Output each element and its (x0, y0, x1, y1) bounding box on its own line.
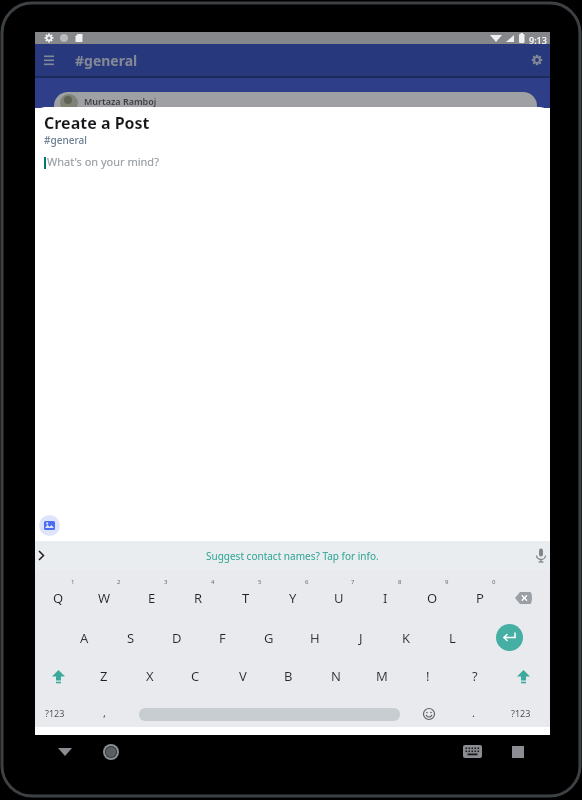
button[interactable]: R (175, 580, 222, 616)
staticText: F (219, 629, 226, 647)
staticText: Q (53, 589, 64, 607)
button[interactable] (463, 745, 482, 759)
staticText: What's on your mind? (47, 154, 159, 169)
staticText: V (239, 667, 247, 685)
staticText: E (148, 589, 156, 607)
button[interactable]: E (128, 580, 175, 616)
button[interactable]: N (312, 658, 359, 694)
button[interactable]: . (472, 705, 475, 720)
staticText: 4 (211, 578, 215, 586)
button[interactable]: P (456, 580, 503, 616)
button[interactable] (35, 658, 82, 694)
staticText: 5 (258, 578, 262, 586)
staticText: C (191, 667, 200, 685)
staticText: 3 (164, 578, 168, 586)
staticText: B (284, 667, 293, 685)
button[interactable] (530, 53, 544, 67)
staticText: S (127, 629, 135, 647)
staticText: L (449, 629, 456, 647)
button[interactable] (102, 743, 120, 761)
staticText: Z (100, 667, 108, 685)
staticText: N (331, 667, 341, 685)
button[interactable]: U (315, 580, 362, 616)
button[interactable]: A (61, 620, 108, 656)
staticText: #general (44, 133, 87, 147)
button[interactable] (496, 624, 523, 651)
button[interactable]: S (107, 620, 154, 656)
button[interactable]: G (245, 620, 292, 656)
button[interactable]: F (199, 620, 246, 656)
staticText: Suggest contact names? Tap for info. (206, 549, 379, 563)
button[interactable]: M (358, 658, 405, 694)
button[interactable]: V (219, 658, 266, 694)
staticText: 6 (305, 578, 309, 586)
button[interactable] (40, 52, 58, 68)
button[interactable]: I (362, 580, 409, 616)
staticText: O (427, 589, 438, 607)
staticText: U (334, 589, 344, 607)
staticText: W (98, 589, 111, 607)
staticText: 2 (117, 578, 121, 586)
button[interactable]: W (81, 580, 128, 616)
button[interactable] (511, 745, 525, 759)
staticText: A (80, 629, 89, 647)
button[interactable]: B (265, 658, 312, 694)
staticText: Create a Post (44, 112, 150, 134)
button[interactable]: Q (35, 580, 82, 616)
button[interactable]: Suggest contact names? Tap for info. (35, 541, 550, 570)
staticText: 8 (398, 578, 402, 586)
button[interactable] (500, 658, 547, 694)
staticText: Y (289, 589, 297, 607)
button[interactable]: ?123 (511, 707, 531, 719)
staticText: K (402, 629, 411, 647)
staticText: X (146, 667, 154, 685)
button[interactable]: O (409, 580, 456, 616)
staticText: D (172, 629, 182, 647)
button[interactable]: K (383, 620, 430, 656)
staticText: 7 (351, 578, 355, 586)
staticText: H (310, 629, 320, 647)
button[interactable]: L (429, 620, 476, 656)
button[interactable]: J (337, 620, 384, 656)
staticText: 9 (445, 578, 449, 586)
button[interactable]: ?123 (45, 707, 65, 719)
button[interactable] (39, 515, 60, 536)
button[interactable]: C (172, 658, 219, 694)
button[interactable]: Z (80, 658, 127, 694)
staticText: #general (75, 51, 138, 70)
button[interactable] (56, 744, 74, 760)
button[interactable]: ? (451, 658, 498, 694)
staticText: M (376, 667, 388, 685)
button[interactable]: , (103, 705, 106, 720)
button[interactable] (421, 706, 437, 722)
staticText: ? (472, 667, 478, 685)
button[interactable] (500, 580, 547, 616)
staticText: 0 (492, 578, 496, 586)
button[interactable]: D (153, 620, 200, 656)
button[interactable]: Y (269, 580, 316, 616)
button[interactable]: X (126, 658, 173, 694)
staticText: R (194, 589, 203, 607)
staticText: ! (426, 667, 430, 685)
staticText: 1 (71, 578, 75, 586)
staticText: G (264, 629, 274, 647)
button[interactable]: ! (404, 658, 451, 694)
staticText: T (242, 589, 250, 607)
staticText: J (359, 629, 363, 647)
button[interactable]: T (222, 580, 269, 616)
staticText: Murtaza Ramboj (84, 95, 157, 107)
staticText: 9:13 (529, 34, 547, 46)
staticText: I (383, 589, 388, 607)
button[interactable]: H (291, 620, 338, 656)
staticText: P (476, 589, 484, 607)
